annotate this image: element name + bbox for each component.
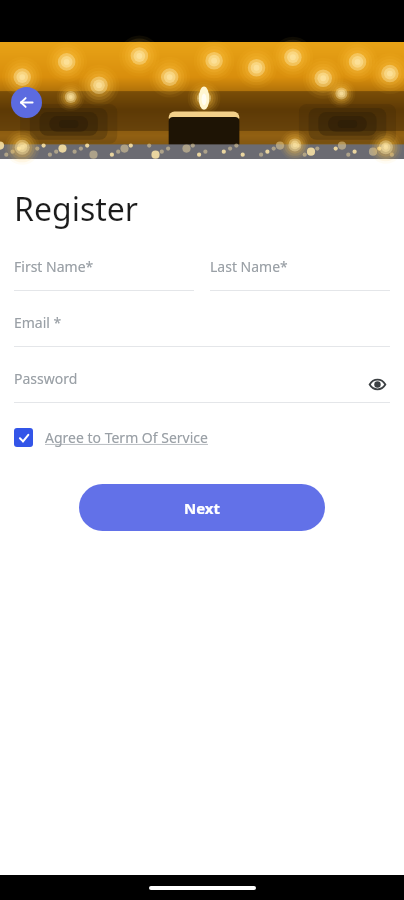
button[interactable]: Show password xyxy=(364,371,390,397)
staticText: Agree to Term Of Service xyxy=(45,428,208,447)
button[interactable]: Password xyxy=(14,369,390,403)
button[interactable]: Back xyxy=(11,87,42,118)
button[interactable]: First Name* xyxy=(14,257,194,291)
staticText: Next xyxy=(184,498,221,518)
staticText: Last Name* xyxy=(210,257,288,276)
staticText: First Name* xyxy=(14,257,94,276)
button[interactable]: Next xyxy=(79,484,325,531)
button[interactable]: Last Name* xyxy=(210,257,390,291)
button[interactable]: Agree to Term Of Service xyxy=(14,426,208,449)
staticText: Password xyxy=(14,369,78,388)
staticText: Email * xyxy=(14,313,62,332)
button[interactable]: Email * xyxy=(14,313,390,347)
staticText: Register xyxy=(14,187,139,231)
